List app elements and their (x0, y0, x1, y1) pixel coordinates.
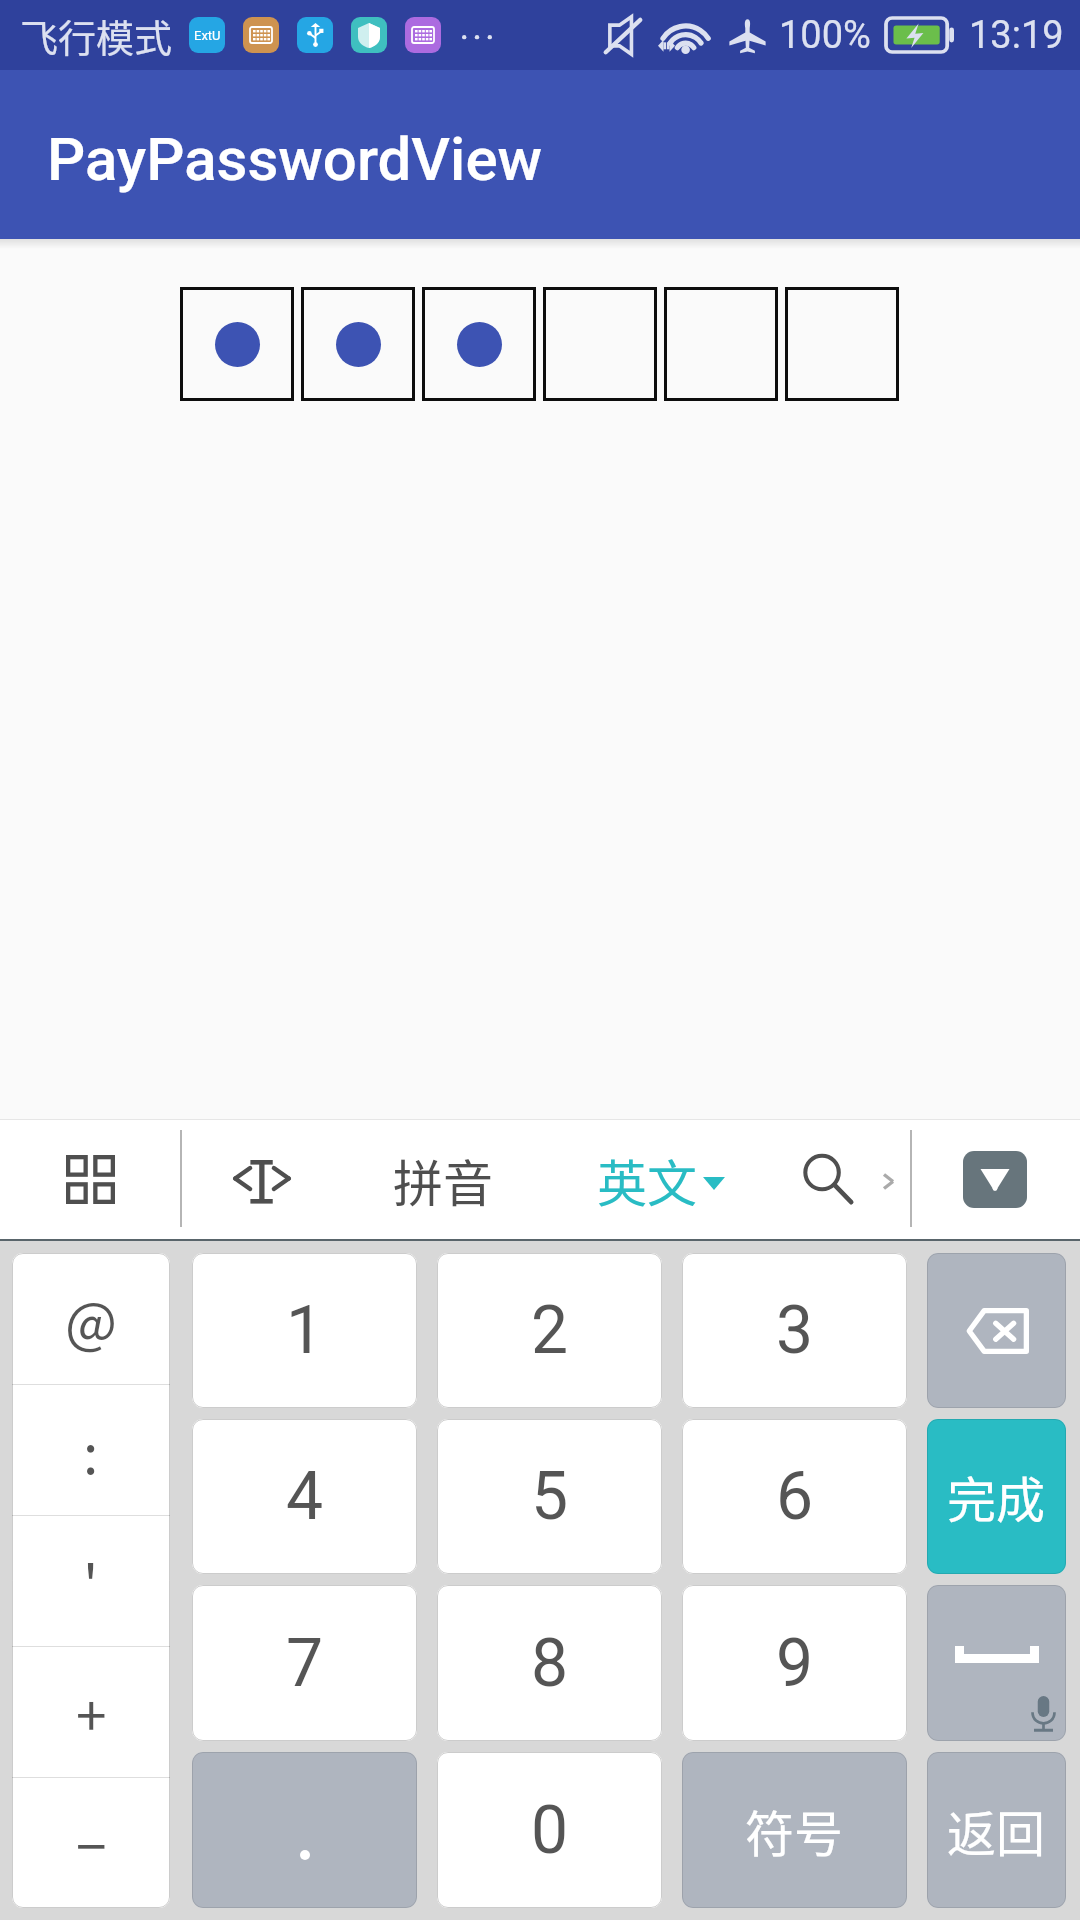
button[interactable]: 9 (682, 1585, 907, 1741)
staticText: 8 (531, 1625, 569, 1702)
button[interactable]: 符号 (682, 1752, 907, 1908)
staticText: 完成 (947, 1461, 1046, 1532)
staticText: 符号 (745, 1795, 844, 1866)
button[interactable]: Move cursor (182, 1119, 342, 1239)
button[interactable]: Period (192, 1752, 417, 1908)
staticText: − (76, 1803, 107, 1883)
button[interactable]: 英文 (545, 1119, 745, 1239)
button[interactable]: Password digit 5 (664, 287, 778, 401)
button[interactable]: Hide keyboard (930, 1119, 1060, 1239)
button[interactable]: 0 (437, 1752, 662, 1908)
button[interactable]: 8 (437, 1585, 662, 1741)
staticText: ExtU (194, 28, 221, 43)
staticText: 100% (779, 13, 871, 58)
staticText: 4 (286, 1458, 324, 1535)
staticText: 返回 (947, 1795, 1046, 1866)
staticText: 英文 (597, 1144, 697, 1216)
button[interactable]: 1 (192, 1253, 417, 1408)
staticText: PayPasswordView (47, 124, 543, 194)
button[interactable]: Password digit 2 (301, 287, 415, 401)
staticText: 9 (776, 1625, 814, 1702)
staticText: + (76, 1672, 107, 1752)
staticText: 2 (531, 1292, 569, 1369)
staticText: 6 (776, 1458, 814, 1535)
button[interactable]: 2 (437, 1253, 662, 1408)
staticText: 7 (286, 1625, 324, 1702)
staticText: 拼音 (393, 1144, 493, 1216)
button[interactable]: Password digit 1 (180, 287, 294, 401)
button[interactable]: Search (768, 1119, 888, 1239)
staticText: 1 (286, 1292, 324, 1369)
button[interactable]: 6 (682, 1419, 907, 1574)
staticText: 0 (531, 1792, 569, 1869)
button[interactable]: Password digit 3 (422, 287, 536, 401)
button[interactable]: 拼音 (350, 1119, 536, 1239)
staticText: : (83, 1410, 99, 1490)
button[interactable]: Password digit 6 (785, 287, 899, 401)
button[interactable]: : (12, 1385, 170, 1515)
button[interactable]: − (12, 1778, 170, 1908)
button[interactable]: 3 (682, 1253, 907, 1408)
staticText: 3 (776, 1292, 814, 1369)
button[interactable]: Delete (927, 1253, 1066, 1408)
button[interactable]: ' (12, 1516, 170, 1646)
button[interactable]: 4 (192, 1419, 417, 1574)
button[interactable]: Password digit 4 (543, 287, 657, 401)
button[interactable]: 5 (437, 1419, 662, 1574)
button[interactable]: Keyboard layouts (0, 1119, 181, 1239)
staticText: 13:19 (969, 13, 1064, 58)
button[interactable]: + (12, 1647, 170, 1777)
button[interactable]: Space (927, 1585, 1066, 1741)
button[interactable]: 7 (192, 1585, 417, 1741)
staticText: 5 (531, 1458, 569, 1535)
button[interactable]: @ (12, 1253, 170, 1384)
button[interactable]: 返回 (927, 1752, 1066, 1908)
staticText: @ (65, 1279, 118, 1359)
staticText: ' (83, 1541, 99, 1621)
button[interactable]: 完成 (927, 1419, 1066, 1574)
staticText: 飞行模式 (20, 8, 173, 63)
